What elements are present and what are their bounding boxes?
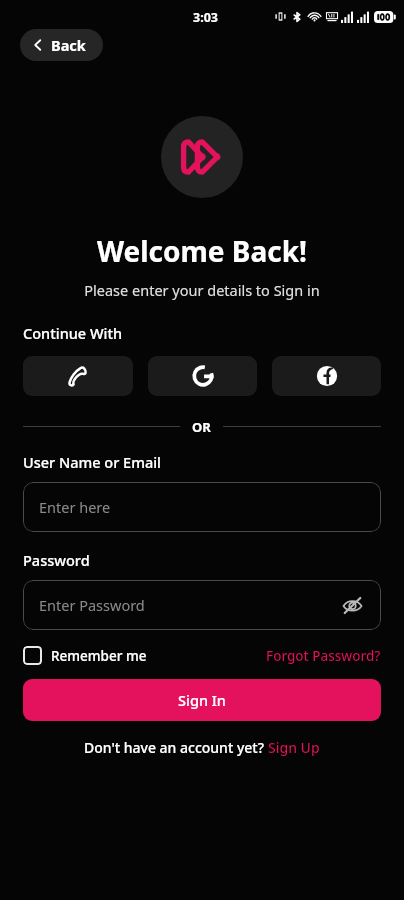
button[interactable]: Enter Password <box>23 580 381 630</box>
staticText: Enter here <box>39 497 111 517</box>
staticText: Enter Password <box>39 595 145 615</box>
button[interactable]: Show password <box>339 592 365 618</box>
button[interactable]: Forgot Password? <box>266 647 381 665</box>
staticText: Sign In <box>178 690 226 710</box>
button[interactable]: Sign In <box>23 679 381 721</box>
button[interactable]: Continue with phone <box>23 356 133 396</box>
staticText: Sign Up <box>268 738 320 757</box>
staticText: Password <box>23 550 90 570</box>
staticText: Remember me <box>51 647 147 665</box>
staticText: User Name or Email <box>23 452 162 472</box>
staticText: Continue With <box>23 323 123 343</box>
button[interactable]: Back <box>20 29 103 61</box>
button[interactable]: Continue with Facebook <box>272 356 381 396</box>
button[interactable]: Remember me <box>23 646 151 665</box>
staticText: Welcome Back! <box>23 232 381 270</box>
staticText: OR <box>192 418 211 434</box>
staticText: Forgot Password? <box>266 647 381 665</box>
button[interactable]: Continue with Google <box>148 356 257 396</box>
button[interactable]: Sign Up <box>268 738 320 757</box>
staticText: 3:03 <box>193 9 218 26</box>
staticText: Don't have an account yet? <box>84 738 268 757</box>
button[interactable]: Enter here <box>23 482 381 532</box>
staticText: Back <box>51 35 86 55</box>
staticText: Please enter your details to Sign in <box>23 280 381 300</box>
